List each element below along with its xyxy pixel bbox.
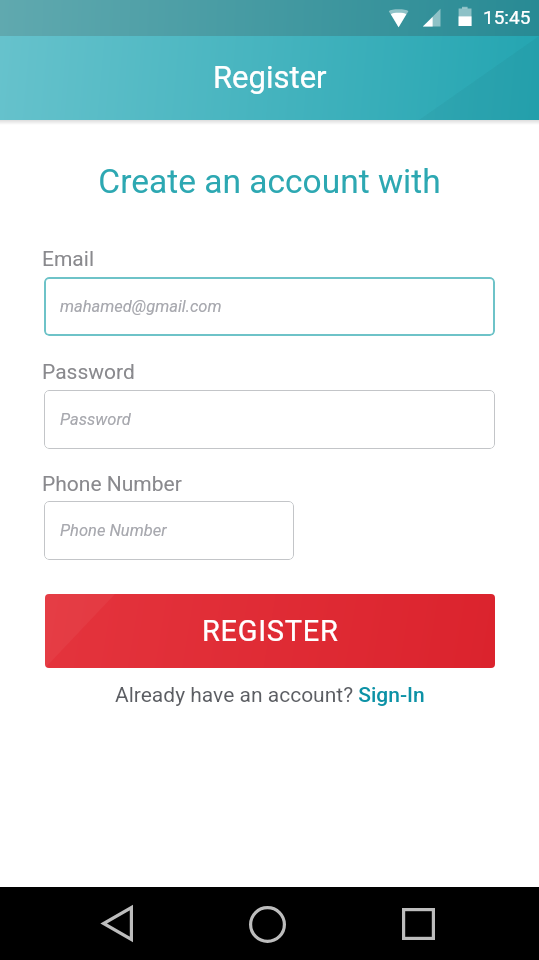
button[interactable]: REGISTER: [45, 594, 495, 668]
button[interactable]: Already have an account? Sign-In: [115, 683, 425, 708]
staticText: Password: [42, 360, 135, 385]
staticText: Phone Number: [60, 521, 167, 540]
button[interactable]: mahamed@gmail.com: [44, 277, 495, 336]
button[interactable]: Password: [44, 390, 495, 449]
staticText: Phone Number: [42, 472, 182, 497]
button[interactable]: Recents: [390, 896, 446, 952]
staticText: mahamed@gmail.com: [60, 297, 222, 316]
button[interactable]: Phone Number: [44, 501, 294, 560]
staticText: Email: [42, 247, 94, 272]
button[interactable]: Back: [89, 895, 145, 951]
button[interactable]: Home: [239, 896, 295, 952]
staticText: Password: [60, 410, 131, 429]
staticText: 15:45: [483, 6, 531, 28]
staticText: Register: [213, 59, 327, 95]
staticText: Create an account with: [0, 162, 539, 201]
staticText: REGISTER: [202, 614, 339, 648]
